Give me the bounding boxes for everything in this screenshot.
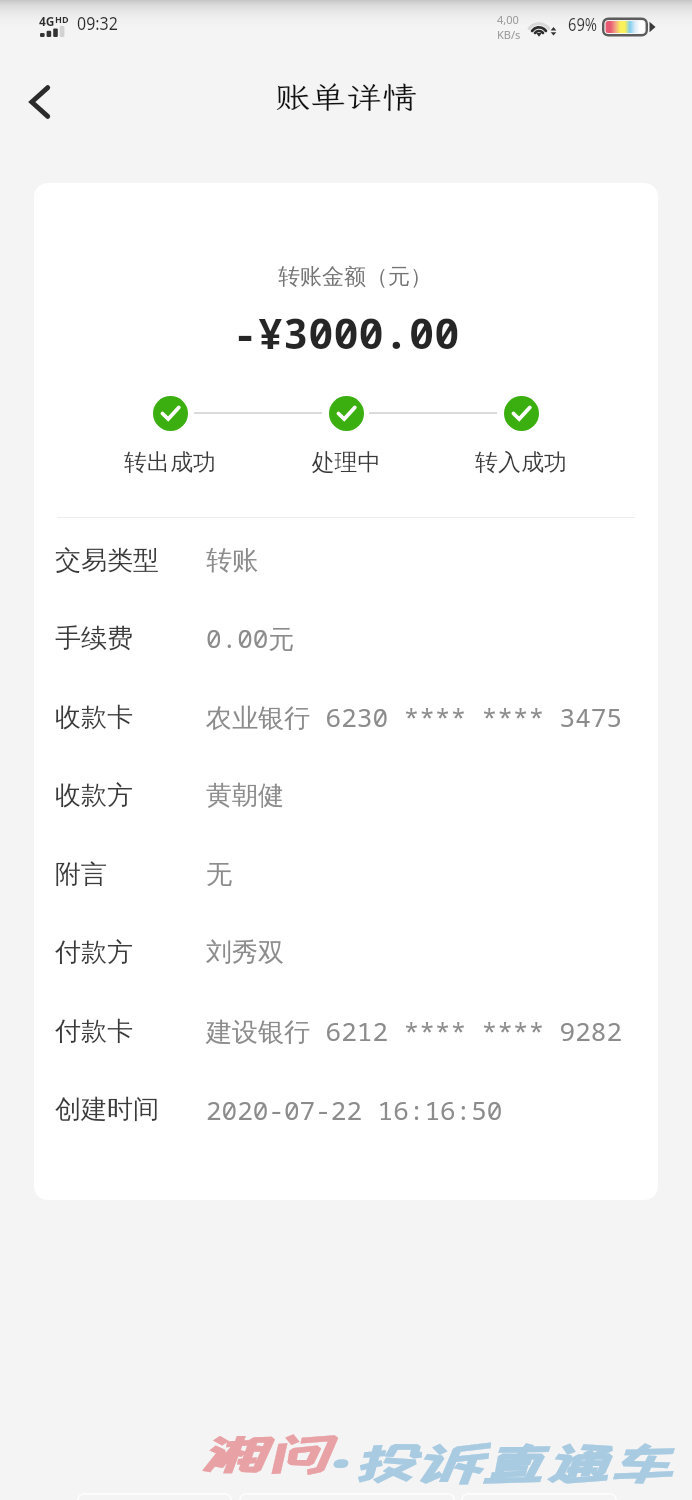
- button[interactable]: 付款方: [34, 913, 658, 991]
- staticText: 转出成功: [80, 448, 260, 477]
- staticText: 收款卡: [55, 701, 133, 734]
- staticText: HD: [55, 13, 69, 25]
- button[interactable]: Back: [15, 75, 69, 129]
- staticText: 手续费: [55, 622, 133, 655]
- staticText: 湘问: [200, 1431, 330, 1476]
- staticText: 09:32: [77, 11, 118, 36]
- staticText: 付款方: [55, 936, 133, 969]
- button[interactable]: 手续费: [34, 599, 658, 677]
- staticText: 付款卡: [55, 1015, 133, 1048]
- staticText: 刘秀双: [206, 936, 284, 969]
- staticText: 账单详情: [275, 77, 417, 117]
- button[interactable]: 收款方: [34, 756, 658, 834]
- staticText: 2020-07-22 16:16:50: [206, 1092, 503, 1127]
- staticText: 转账: [206, 544, 258, 577]
- button[interactable]: 付款卡: [34, 992, 658, 1070]
- staticText: ·投诉直通车: [330, 1431, 674, 1493]
- staticText: 0.00元: [206, 620, 295, 656]
- staticText: KB/s: [497, 27, 521, 42]
- staticText: 交易类型: [55, 544, 159, 577]
- staticText: 无: [206, 858, 232, 891]
- button[interactable]: 附言: [34, 835, 658, 913]
- staticText: 创建时间: [55, 1093, 159, 1126]
- staticText: 69%: [568, 11, 597, 37]
- button[interactable]: 收款卡: [34, 678, 658, 756]
- staticText: 4G: [39, 13, 55, 29]
- button[interactable]: 创建时间: [34, 1070, 658, 1148]
- staticText: 转入成功: [431, 448, 611, 477]
- button[interactable]: 交易类型: [34, 521, 658, 599]
- staticText: 黄朝健: [206, 779, 284, 812]
- staticText: 农业银行 6230 **** **** 3475: [206, 699, 623, 735]
- staticText: 4,00: [497, 12, 519, 27]
- staticText: 处理中: [256, 448, 436, 477]
- staticText: 建设银行 6212 **** **** 9282: [206, 1013, 623, 1049]
- staticText: -¥3000.00: [34, 304, 658, 361]
- staticText: 附言: [55, 858, 107, 891]
- button[interactable]: Back: [461, 1493, 617, 1500]
- staticText: 收款方: [55, 779, 133, 812]
- staticText: 转账金额（元）: [43, 263, 658, 291]
- button[interactable]: Home: [239, 1493, 455, 1500]
- button[interactable]: Recent apps: [77, 1493, 232, 1500]
